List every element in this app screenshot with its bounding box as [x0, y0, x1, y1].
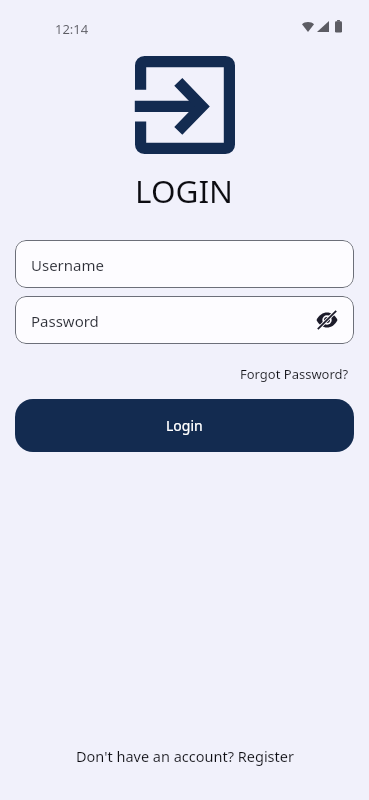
staticText: Password: [31, 311, 99, 331]
staticText: Username: [31, 255, 104, 275]
staticText: Don't have an account? Register: [76, 746, 294, 766]
button[interactable]: Password: [15, 296, 354, 344]
button[interactable]: Forgot Password?: [240, 365, 349, 383]
staticText: Forgot Password?: [240, 365, 349, 383]
staticText: 12:14: [55, 20, 89, 38]
staticText: Login: [166, 416, 203, 435]
button[interactable]: Don't have an account? Register: [76, 746, 294, 766]
button[interactable]: Login: [15, 399, 354, 452]
button[interactable]: Toggle password visibility: [314, 307, 340, 333]
button[interactable]: Username: [15, 240, 354, 288]
staticText: LOGIN: [135, 169, 234, 212]
